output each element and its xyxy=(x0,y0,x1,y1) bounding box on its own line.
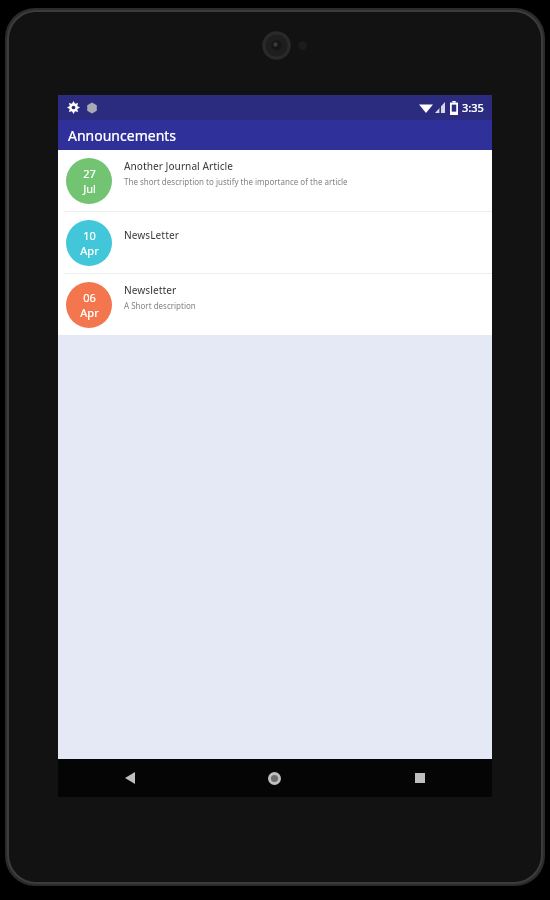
button[interactable]: 10 xyxy=(58,212,492,273)
staticText: Apr xyxy=(80,305,99,320)
staticText: Announcements xyxy=(68,126,177,145)
staticText: A Short description xyxy=(124,300,196,311)
button[interactable]: Back xyxy=(58,759,202,797)
button[interactable]: Home xyxy=(202,759,347,797)
staticText: 06 xyxy=(83,290,96,305)
staticText: Apr xyxy=(80,243,99,258)
button[interactable]: 27 xyxy=(58,150,492,211)
button[interactable]: Recent apps xyxy=(347,759,492,797)
button[interactable]: 06 xyxy=(58,274,492,335)
staticText: 27 xyxy=(83,166,96,181)
staticText: Newsletter xyxy=(124,283,177,297)
staticText: 10 xyxy=(83,228,96,243)
staticText: NewsLetter xyxy=(124,228,179,242)
staticText: The short description to justify the imp… xyxy=(124,176,348,187)
staticText: 3:35 xyxy=(462,100,484,115)
staticText: Another Journal Article xyxy=(124,159,234,173)
staticText: Jul xyxy=(83,181,96,196)
